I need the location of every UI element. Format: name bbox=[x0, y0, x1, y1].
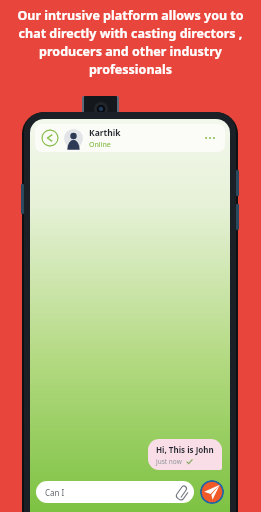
button[interactable]: Hi, This is John bbox=[148, 439, 222, 470]
staticText: just now bbox=[156, 457, 182, 466]
button[interactable]: Attach file bbox=[175, 486, 188, 499]
staticText: Our intrusive platform allows you to cha… bbox=[9, 7, 252, 78]
button[interactable]: More options bbox=[201, 129, 219, 147]
button[interactable]: Back bbox=[41, 129, 59, 147]
button[interactable]: Can I bbox=[36, 481, 194, 503]
button[interactable]: Back bbox=[35, 124, 225, 152]
button[interactable]: Send bbox=[200, 480, 224, 504]
staticText: Online bbox=[89, 140, 111, 150]
staticText: Hi, This is John bbox=[156, 444, 214, 455]
staticText: Karthik bbox=[89, 127, 121, 139]
staticText: Can I bbox=[45, 487, 175, 498]
